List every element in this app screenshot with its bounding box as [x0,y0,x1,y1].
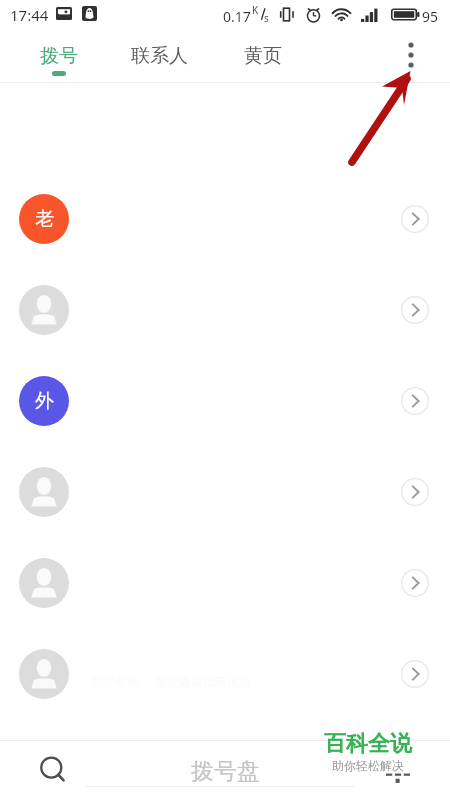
staticText: 百科全说 [324,730,412,758]
staticText: 老 [35,207,54,231]
button[interactable]: 联系人 [107,44,211,82]
staticText: 95 [422,7,439,26]
staticText: 外 [35,389,54,413]
staticText: 黄页 [244,44,282,68]
staticText: s [264,11,269,25]
button[interactable]: Details [397,656,433,692]
button[interactable]: Details [0,446,450,537]
staticText: 17:44 [10,5,49,25]
staticText: 联系人 [131,44,188,68]
button[interactable]: Details [397,292,433,328]
button[interactable]: Details [397,474,433,510]
button[interactable]: Details [0,264,450,355]
button[interactable]: 拨号 [7,44,111,82]
button[interactable]: More options [387,31,434,78]
staticText: 0.17 [223,7,251,26]
button[interactable]: Details [397,565,433,601]
button[interactable]: Details [0,537,450,628]
button[interactable]: Details [397,383,433,419]
button[interactable]: 老 [0,173,450,264]
button[interactable]: Search [31,748,76,793]
button[interactable]: Details [397,201,433,237]
staticText: 拨号 [40,44,78,68]
button[interactable]: 百科全说 [320,730,416,773]
staticText: 拨号盘 [191,757,260,785]
staticText: 助你轻松解决 [332,758,404,773]
staticText: K [252,3,259,17]
button[interactable]: 外 [0,355,450,446]
button[interactable]: 黄页 [211,44,315,82]
button[interactable]: 用户名称 · 最近通话记录信息 [0,628,450,719]
button[interactable]: 拨号盘 [160,757,291,785]
